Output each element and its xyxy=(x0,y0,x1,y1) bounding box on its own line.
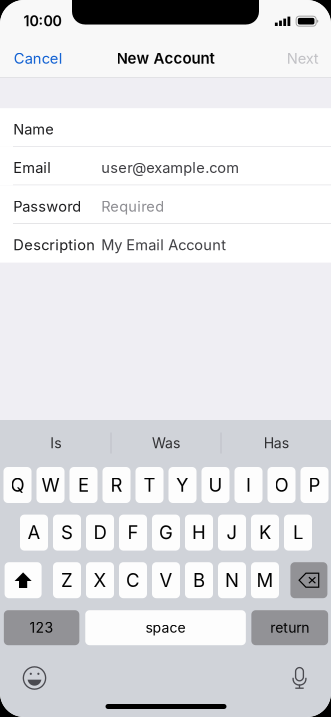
button[interactable]: W xyxy=(36,467,64,503)
button[interactable]: Cancel xyxy=(0,37,75,75)
staticText: U xyxy=(208,474,222,496)
button[interactable]: I xyxy=(234,467,262,503)
button[interactable]: Next xyxy=(275,37,331,75)
button[interactable]: L xyxy=(284,515,312,551)
staticText: O xyxy=(274,474,288,496)
staticText: C xyxy=(126,569,140,591)
staticText: Description xyxy=(13,236,95,254)
staticText: K xyxy=(259,521,271,544)
button[interactable]: 123 xyxy=(4,610,79,645)
button[interactable]: Emoji xyxy=(14,661,54,695)
staticText: Q xyxy=(10,474,24,496)
staticText: 123 xyxy=(30,619,54,636)
button[interactable]: X xyxy=(86,562,114,598)
staticText: Y xyxy=(176,474,189,496)
button[interactable]: space xyxy=(85,610,246,645)
button[interactable]: Delete xyxy=(290,562,327,598)
staticText: Z xyxy=(61,569,73,591)
button[interactable]: H xyxy=(185,515,213,551)
button[interactable]: K xyxy=(251,515,279,551)
staticText: S xyxy=(61,521,73,544)
staticText: P xyxy=(308,474,320,496)
staticText: H xyxy=(192,521,206,544)
staticText: E xyxy=(78,474,89,496)
staticText: Required xyxy=(101,198,164,215)
staticText: Cancel xyxy=(14,49,63,67)
staticText: space xyxy=(145,619,185,636)
button[interactable]: B xyxy=(185,562,213,598)
button[interactable]: T xyxy=(135,467,163,503)
staticText: D xyxy=(93,521,106,544)
button[interactable]: V xyxy=(152,562,180,598)
staticText: Next xyxy=(287,49,319,67)
button[interactable]: S xyxy=(53,515,81,551)
button[interactable]: Email xyxy=(0,147,331,185)
staticText: Email xyxy=(13,159,51,177)
button[interactable]: P xyxy=(300,467,328,503)
staticText: F xyxy=(127,521,138,544)
button[interactable]: O xyxy=(267,467,295,503)
staticText: 10:00 xyxy=(24,13,62,30)
button[interactable]: Shift xyxy=(5,562,42,598)
staticText: T xyxy=(143,474,155,496)
button[interactable]: Dictate xyxy=(279,661,319,695)
staticText: Has xyxy=(264,434,289,452)
button[interactable]: U xyxy=(201,467,229,503)
staticText: New Account xyxy=(116,49,214,67)
button[interactable]: R xyxy=(102,467,130,503)
staticText: R xyxy=(110,474,122,496)
button[interactable]: Q xyxy=(3,467,31,503)
button[interactable]: Is xyxy=(0,423,111,463)
staticText: Password xyxy=(13,198,81,215)
staticText: X xyxy=(93,569,106,591)
button[interactable]: F xyxy=(119,515,147,551)
button[interactable]: G xyxy=(152,515,180,551)
button[interactable]: M xyxy=(251,562,279,598)
staticText: user@example.com xyxy=(101,159,239,177)
staticText: return xyxy=(270,619,309,636)
staticText: A xyxy=(27,521,40,544)
staticText: M xyxy=(256,569,273,591)
staticText: Name xyxy=(13,120,54,138)
staticText: V xyxy=(159,569,172,591)
button[interactable]: Password xyxy=(0,185,331,224)
button[interactable]: J xyxy=(218,515,246,551)
staticText: I xyxy=(246,474,251,496)
button[interactable]: Z xyxy=(53,562,81,598)
staticText: N xyxy=(225,569,239,591)
staticText: Was xyxy=(152,434,180,452)
staticText: L xyxy=(293,521,303,544)
staticText: J xyxy=(226,521,237,544)
button[interactable]: Description xyxy=(0,224,331,263)
button[interactable]: D xyxy=(86,515,114,551)
button[interactable]: return xyxy=(251,610,328,645)
staticText: W xyxy=(41,474,59,496)
button[interactable]: Name xyxy=(0,108,331,147)
button[interactable]: E xyxy=(69,467,97,503)
button[interactable]: N xyxy=(218,562,246,598)
button[interactable]: Y xyxy=(168,467,196,503)
staticText: My Email Account xyxy=(101,236,226,254)
staticText: Is xyxy=(50,434,61,452)
button[interactable]: Was xyxy=(111,423,221,463)
button[interactable]: C xyxy=(119,562,147,598)
staticText: G xyxy=(159,521,173,544)
button[interactable]: A xyxy=(20,515,48,551)
staticText: B xyxy=(193,569,205,591)
button[interactable]: Has xyxy=(221,423,331,463)
